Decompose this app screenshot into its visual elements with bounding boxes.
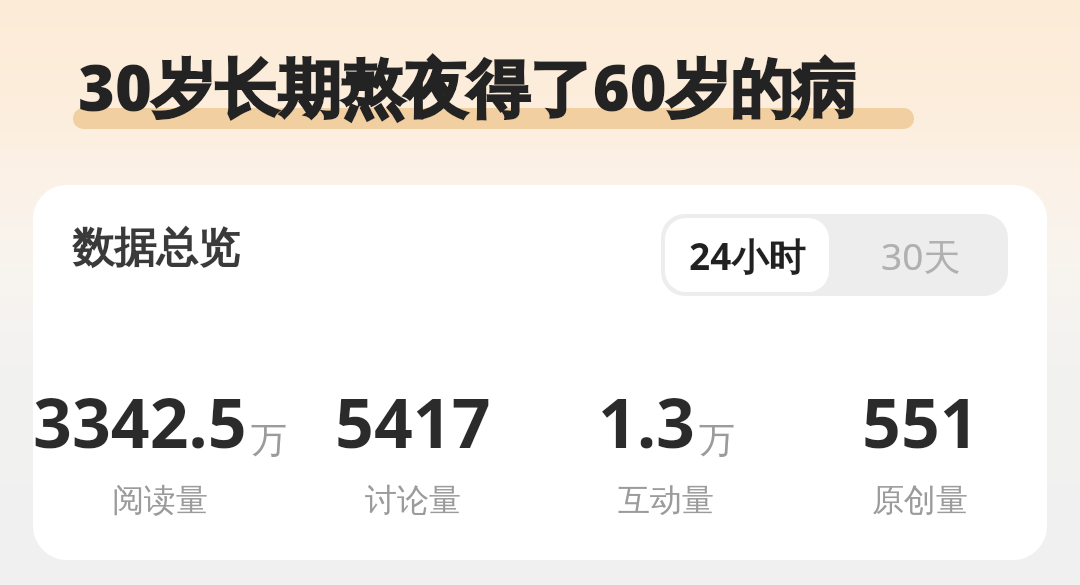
button[interactable]: 551 (793, 375, 1047, 520)
button[interactable]: 3342.5 (33, 375, 286, 520)
staticText: 原创量 (872, 480, 968, 520)
staticText: 阅读量 (112, 480, 208, 520)
button[interactable]: 5417 (286, 375, 539, 520)
staticText: 万 (699, 417, 735, 462)
button[interactable]: 30天 (833, 214, 1008, 296)
staticText: 5417 (335, 375, 491, 468)
staticText: 互动量 (618, 480, 714, 520)
button[interactable]: 24小时 (665, 218, 829, 292)
staticText: 551 (862, 375, 979, 468)
button[interactable]: 1.3 (539, 375, 793, 520)
staticText: 1.3 (598, 375, 695, 468)
staticText: 讨论量 (365, 480, 461, 520)
staticText: 24小时 (689, 230, 806, 281)
staticText: 万 (251, 417, 286, 462)
staticText: 数据总览 (72, 222, 240, 275)
staticText: 3342.5 (33, 375, 247, 468)
staticText: 30岁长期熬夜得了60岁的病 (78, 44, 856, 130)
staticText: 30天 (881, 230, 961, 281)
